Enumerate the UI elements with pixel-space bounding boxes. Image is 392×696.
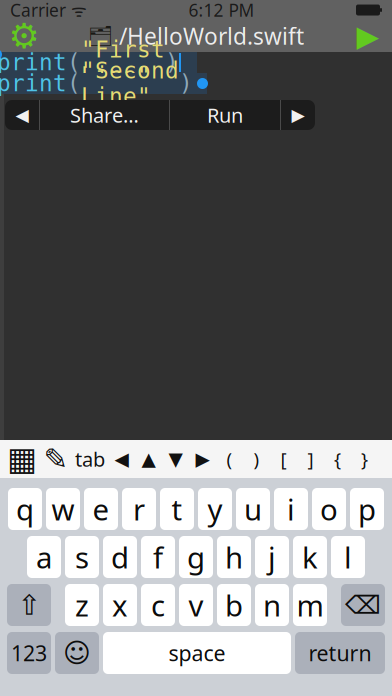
button[interactable]: Edit — [40, 440, 72, 478]
staticText: f — [153, 537, 163, 576]
staticText: t — [171, 489, 182, 528]
button[interactable]: a — [27, 536, 61, 578]
staticText: [ — [280, 447, 286, 471]
button[interactable]: k — [293, 536, 327, 578]
button[interactable]: v — [179, 584, 213, 626]
staticText: w — [51, 489, 74, 528]
staticText: /HelloWorld.swift — [119, 21, 304, 51]
staticText: l — [344, 537, 352, 576]
staticText: ▶ — [356, 19, 379, 53]
button[interactable]: l — [331, 536, 365, 578]
staticText: j — [268, 537, 276, 576]
button[interactable]: y — [198, 488, 232, 530]
button[interactable]: Close bracket — [297, 440, 324, 478]
button[interactable]: Open brace — [324, 440, 351, 478]
button[interactable]: g — [179, 536, 213, 578]
staticText: return — [308, 639, 371, 667]
button[interactable]: space — [103, 632, 291, 674]
button[interactable]: b — [217, 584, 251, 626]
staticText: r — [133, 489, 145, 528]
staticText: ▶ — [195, 448, 209, 470]
button[interactable]: n — [255, 584, 289, 626]
button[interactable]: h — [217, 536, 251, 578]
button[interactable]: o — [312, 488, 346, 530]
button[interactable]: Hide Keyboard — [4, 440, 40, 478]
staticText: p — [358, 489, 376, 528]
button[interactable]: Close brace — [351, 440, 378, 478]
button[interactable]: x — [103, 584, 137, 626]
staticText: z — [75, 585, 89, 624]
button[interactable]: 123 — [7, 632, 51, 674]
button[interactable]: i — [274, 488, 308, 530]
staticText: ) — [165, 50, 179, 75]
staticText: v — [188, 585, 203, 624]
button[interactable]: Run — [170, 100, 280, 130]
staticText: s — [75, 537, 89, 576]
button[interactable]: Previous — [5, 100, 39, 130]
staticText: 123 — [11, 639, 47, 667]
button[interactable]: p — [350, 488, 384, 530]
staticText: Share… — [70, 102, 139, 128]
staticText: ) — [179, 71, 193, 96]
staticText: ⇧ — [17, 589, 40, 621]
button[interactable]: j — [255, 536, 289, 578]
button[interactable]: Emoji — [55, 632, 99, 674]
staticText: ⌫ — [345, 591, 381, 619]
staticText: ▦ — [7, 441, 37, 477]
button[interactable]: Down — [162, 440, 189, 478]
staticText: g — [187, 537, 205, 576]
button[interactable]: Open bracket — [270, 440, 297, 478]
staticText: x — [112, 585, 128, 624]
staticText: n — [263, 585, 281, 624]
button[interactable]: Right — [189, 440, 216, 478]
staticText: ( — [67, 50, 81, 75]
staticText: ◀ — [15, 105, 28, 125]
button[interactable]: z — [65, 584, 99, 626]
staticText: y — [207, 489, 222, 528]
button[interactable]: Close paren — [243, 440, 270, 478]
staticText: "First Line" — [81, 37, 165, 88]
staticText: ( — [67, 71, 81, 96]
staticText: ▲ — [141, 448, 155, 470]
staticText: q — [16, 489, 34, 528]
staticText: print — [0, 71, 67, 96]
button[interactable]: Run — [346, 20, 390, 52]
button[interactable]: Next — [281, 100, 315, 130]
staticText: } — [361, 447, 368, 471]
button[interactable]: c — [141, 584, 175, 626]
staticText: ▶ — [291, 105, 304, 125]
staticText: m — [296, 585, 323, 624]
staticText: ▼ — [168, 448, 182, 470]
staticText: c — [151, 585, 165, 624]
button[interactable]: Share… — [40, 100, 169, 130]
staticText: Carrier — [10, 0, 66, 21]
button[interactable]: Left — [108, 440, 135, 478]
button[interactable]: Up — [135, 440, 162, 478]
button[interactable]: Shift — [7, 584, 51, 626]
button[interactable]: tab — [72, 440, 108, 478]
staticText: k — [302, 537, 318, 576]
staticText: a — [36, 537, 52, 576]
staticText: ☺ — [63, 638, 91, 668]
button[interactable]: w — [46, 488, 80, 530]
staticText: space — [168, 639, 225, 667]
staticText: Run — [207, 102, 243, 128]
button[interactable]: Open paren — [216, 440, 243, 478]
button[interactable]: s — [65, 536, 99, 578]
button[interactable]: f — [141, 536, 175, 578]
button[interactable]: t — [160, 488, 194, 530]
staticText: print — [0, 50, 67, 75]
button[interactable]: Settings — [2, 20, 46, 52]
button[interactable]: d — [103, 536, 137, 578]
staticText: 6:12 PM — [188, 0, 254, 21]
staticText: "Second Line" — [81, 58, 179, 109]
button[interactable]: u — [236, 488, 270, 530]
button[interactable]: Delete — [341, 584, 385, 626]
button[interactable]: return — [295, 632, 385, 674]
button[interactable]: e — [84, 488, 118, 530]
button[interactable]: r — [122, 488, 156, 530]
button[interactable]: m — [293, 584, 327, 626]
staticText: b — [225, 585, 243, 624]
button[interactable]: q — [8, 488, 42, 530]
staticText: ( — [226, 447, 232, 471]
